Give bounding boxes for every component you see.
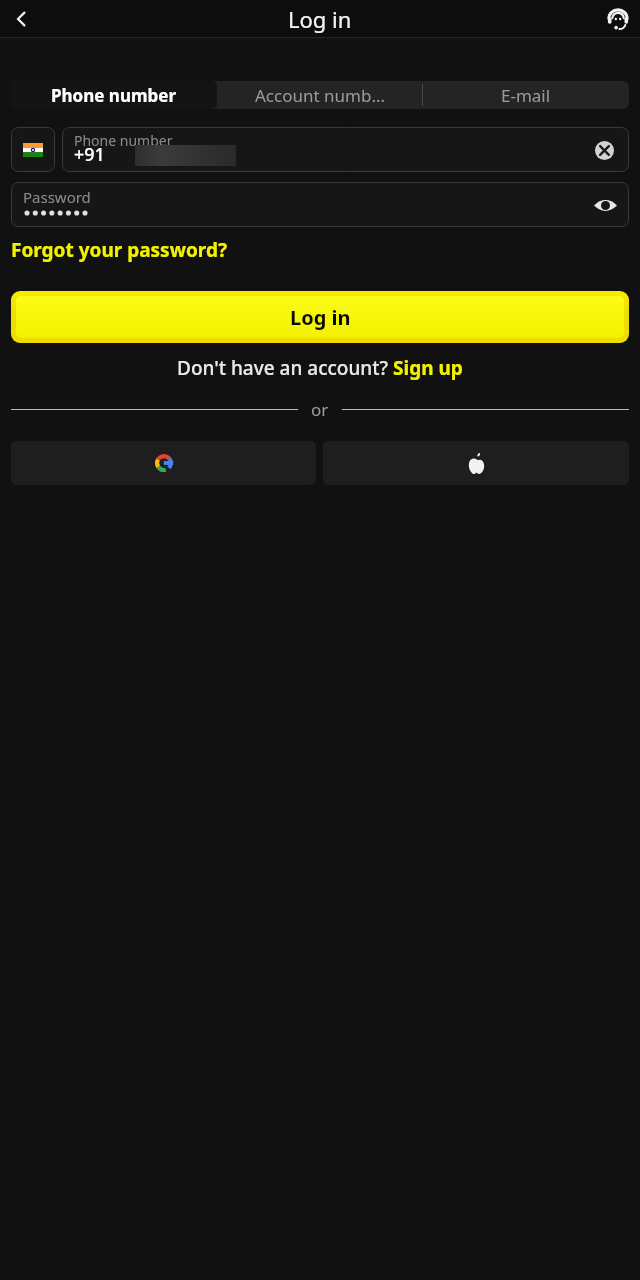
- staticText: E-mail: [501, 84, 551, 107]
- staticText: Forgot your password?: [11, 237, 227, 263]
- staticText: Password: [23, 187, 91, 207]
- staticText: Log in: [290, 304, 351, 331]
- button[interactable]: Show password: [589, 189, 621, 221]
- button[interactable]: Log in: [11, 291, 629, 343]
- staticText: Phone number: [51, 84, 177, 107]
- staticText: or: [311, 398, 329, 421]
- button[interactable]: Phone number: [62, 127, 629, 172]
- staticText: Don't have an account?: [177, 355, 393, 381]
- staticText: +91: [74, 142, 105, 167]
- staticText: Account numb...: [255, 84, 386, 107]
- button[interactable]: Clear: [589, 135, 619, 165]
- button[interactable]: Back: [2, 0, 42, 38]
- button[interactable]: Phone number: [11, 81, 217, 109]
- button[interactable]: Forgot your password?: [11, 235, 227, 265]
- staticText: Phone number: [74, 131, 173, 150]
- button[interactable]: Sign in with Google: [11, 441, 316, 485]
- button[interactable]: Password: [11, 182, 629, 227]
- button[interactable]: Country code: [11, 127, 55, 172]
- staticText: Log in: [288, 4, 352, 34]
- button[interactable]: Sign in with Apple: [323, 441, 629, 485]
- button[interactable]: Sign up: [393, 355, 463, 381]
- button[interactable]: Support: [600, 1, 636, 37]
- button[interactable]: Account numb...: [217, 81, 423, 109]
- button[interactable]: E-mail: [423, 81, 629, 109]
- staticText: Sign up: [393, 355, 463, 381]
